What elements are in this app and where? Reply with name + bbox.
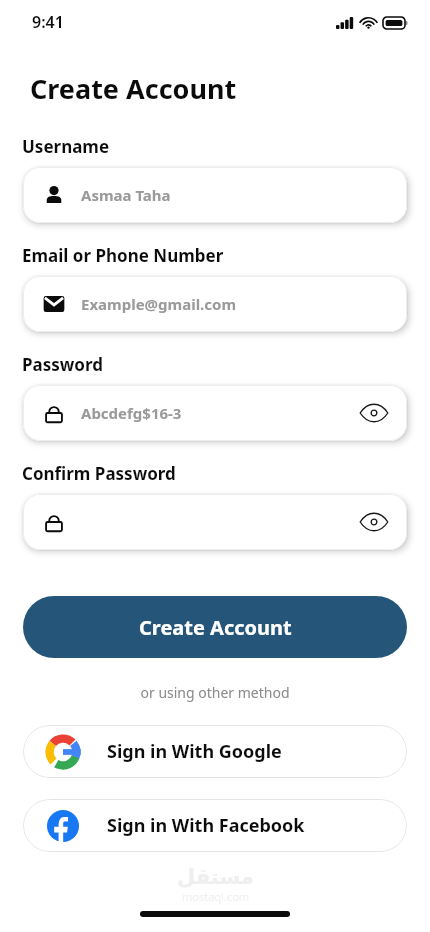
- staticText: Create Account: [139, 614, 292, 641]
- button[interactable]: Toggle password visibility: [357, 396, 391, 430]
- staticText: Example@gmail.com: [81, 294, 391, 314]
- staticText: Abcdefg$16-3: [81, 403, 357, 423]
- button[interactable]: Abcdefg$16-3: [23, 385, 407, 441]
- button[interactable]: Create Account: [23, 596, 407, 658]
- staticText: Sign in With Google: [107, 739, 282, 764]
- button[interactable]: Toggle password visibility: [23, 494, 407, 550]
- staticText: Asmaa Taha: [81, 185, 391, 205]
- staticText: mostaql.com: [182, 889, 250, 904]
- staticText: Username: [22, 135, 110, 158]
- button[interactable]: Toggle password visibility: [357, 505, 391, 539]
- button[interactable]: Asmaa Taha: [23, 167, 407, 223]
- staticText: Email or Phone Number: [22, 244, 224, 267]
- button[interactable]: Example@gmail.com: [23, 276, 407, 332]
- staticText: or using other method: [0, 683, 430, 702]
- staticText: Confirm Password: [22, 462, 176, 485]
- staticText: Create Account: [30, 70, 237, 107]
- staticText: مستقل: [177, 865, 254, 889]
- button[interactable]: Sign in With Facebook: [23, 799, 407, 852]
- staticText: Sign in With Facebook: [107, 813, 305, 838]
- staticText: Password: [22, 353, 103, 376]
- button[interactable]: Sign in With Google: [23, 725, 407, 778]
- staticText: 9:41: [32, 11, 64, 33]
